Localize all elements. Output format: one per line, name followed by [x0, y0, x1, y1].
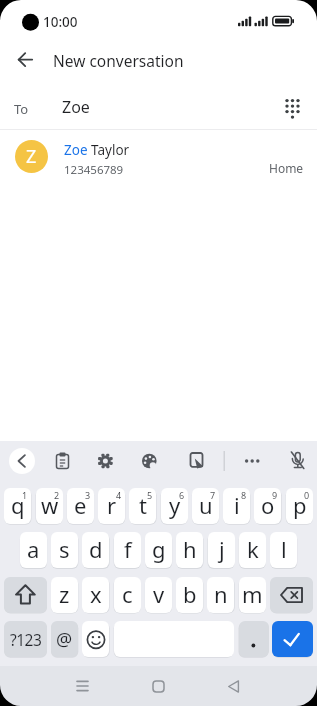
staticText: n — [214, 579, 228, 609]
button[interactable]: ?123 — [4, 621, 47, 657]
button[interactable]: n — [207, 577, 234, 613]
button[interactable] — [137, 449, 162, 474]
staticText: g — [152, 534, 166, 564]
staticText: t — [139, 490, 147, 520]
button[interactable] — [13, 47, 39, 73]
button[interactable] — [280, 96, 305, 121]
button[interactable]: w — [36, 488, 63, 524]
staticText: 6 — [179, 489, 185, 501]
button[interactable]: y — [161, 488, 188, 524]
button[interactable] — [240, 449, 265, 474]
staticText: ?123 — [10, 629, 42, 650]
button[interactable] — [184, 449, 209, 474]
button[interactable] — [239, 621, 269, 657]
button[interactable]: l — [270, 532, 297, 568]
button[interactable]: p — [286, 488, 313, 524]
button[interactable]: m — [239, 577, 266, 613]
button[interactable] — [285, 449, 310, 474]
staticText: u — [199, 490, 213, 520]
button[interactable]: r — [98, 488, 125, 524]
button[interactable]: c — [114, 577, 141, 613]
staticText: p — [293, 490, 307, 520]
staticText: k — [247, 534, 259, 564]
button[interactable]: u — [192, 488, 219, 524]
button[interactable]: d — [82, 532, 109, 568]
button[interactable]: @ — [51, 621, 78, 657]
staticText: j — [219, 534, 225, 564]
button[interactable] — [0, 133, 317, 181]
button[interactable] — [82, 621, 109, 657]
staticText: o — [261, 490, 275, 520]
staticText: To — [14, 100, 29, 118]
staticText: 123456789 — [64, 162, 124, 178]
staticText: 10:00 — [43, 13, 78, 31]
staticText: w — [41, 490, 59, 520]
button[interactable]: h — [176, 532, 203, 568]
button[interactable] — [93, 449, 118, 474]
staticText: l — [281, 534, 287, 564]
staticText: a — [27, 534, 40, 564]
button[interactable]: z — [51, 577, 78, 613]
staticText: 9 — [272, 489, 278, 501]
button[interactable]: j — [208, 532, 235, 568]
staticText: @ — [56, 627, 73, 652]
button[interactable]: q — [4, 488, 31, 524]
button[interactable] — [9, 448, 35, 474]
staticText: 0 — [304, 489, 310, 501]
button[interactable] — [272, 621, 313, 657]
button[interactable] — [270, 577, 313, 613]
button[interactable] — [0, 88, 317, 129]
button[interactable] — [4, 577, 47, 613]
button[interactable] — [146, 674, 171, 699]
button[interactable]: o — [254, 488, 281, 524]
staticText: f — [124, 534, 132, 564]
staticText: r — [107, 490, 117, 520]
button[interactable]: e — [67, 488, 94, 524]
staticText: i — [234, 490, 240, 520]
button[interactable]: s — [51, 532, 78, 568]
staticText: e — [74, 490, 87, 520]
staticText: Zoe — [62, 96, 90, 118]
button[interactable]: x — [82, 577, 109, 613]
staticText: b — [183, 579, 197, 609]
staticText: 7 — [210, 489, 216, 501]
staticText: Zoe Taylor — [64, 141, 130, 159]
button[interactable]: a — [20, 532, 47, 568]
button[interactable]: t — [129, 488, 156, 524]
staticText: 8 — [241, 489, 247, 501]
staticText: s — [59, 534, 70, 564]
button[interactable]: f — [114, 532, 141, 568]
button[interactable] — [221, 674, 246, 699]
staticText: New conversation — [53, 50, 184, 71]
button[interactable] — [70, 674, 95, 699]
staticText: Home — [269, 160, 304, 176]
button[interactable]: v — [145, 577, 172, 613]
staticText: h — [183, 534, 197, 564]
button[interactable] — [50, 449, 75, 474]
staticText: 4 — [116, 489, 122, 501]
staticText: z — [59, 579, 70, 609]
button[interactable]: g — [145, 532, 172, 568]
staticText: d — [89, 534, 103, 564]
button[interactable]: k — [239, 532, 266, 568]
button[interactable]: b — [176, 577, 203, 613]
staticText: x — [90, 579, 102, 609]
staticText: 2 — [54, 489, 60, 501]
staticText: c — [122, 579, 133, 609]
button[interactable]: i — [223, 488, 250, 524]
staticText: q — [11, 490, 25, 520]
staticText: 1 — [22, 489, 28, 501]
staticText: 5 — [147, 489, 153, 501]
staticText: m — [242, 579, 263, 609]
staticText: Z — [26, 144, 37, 169]
staticText: 3 — [85, 489, 91, 501]
staticText: v — [153, 579, 165, 609]
staticText: y — [169, 490, 181, 520]
